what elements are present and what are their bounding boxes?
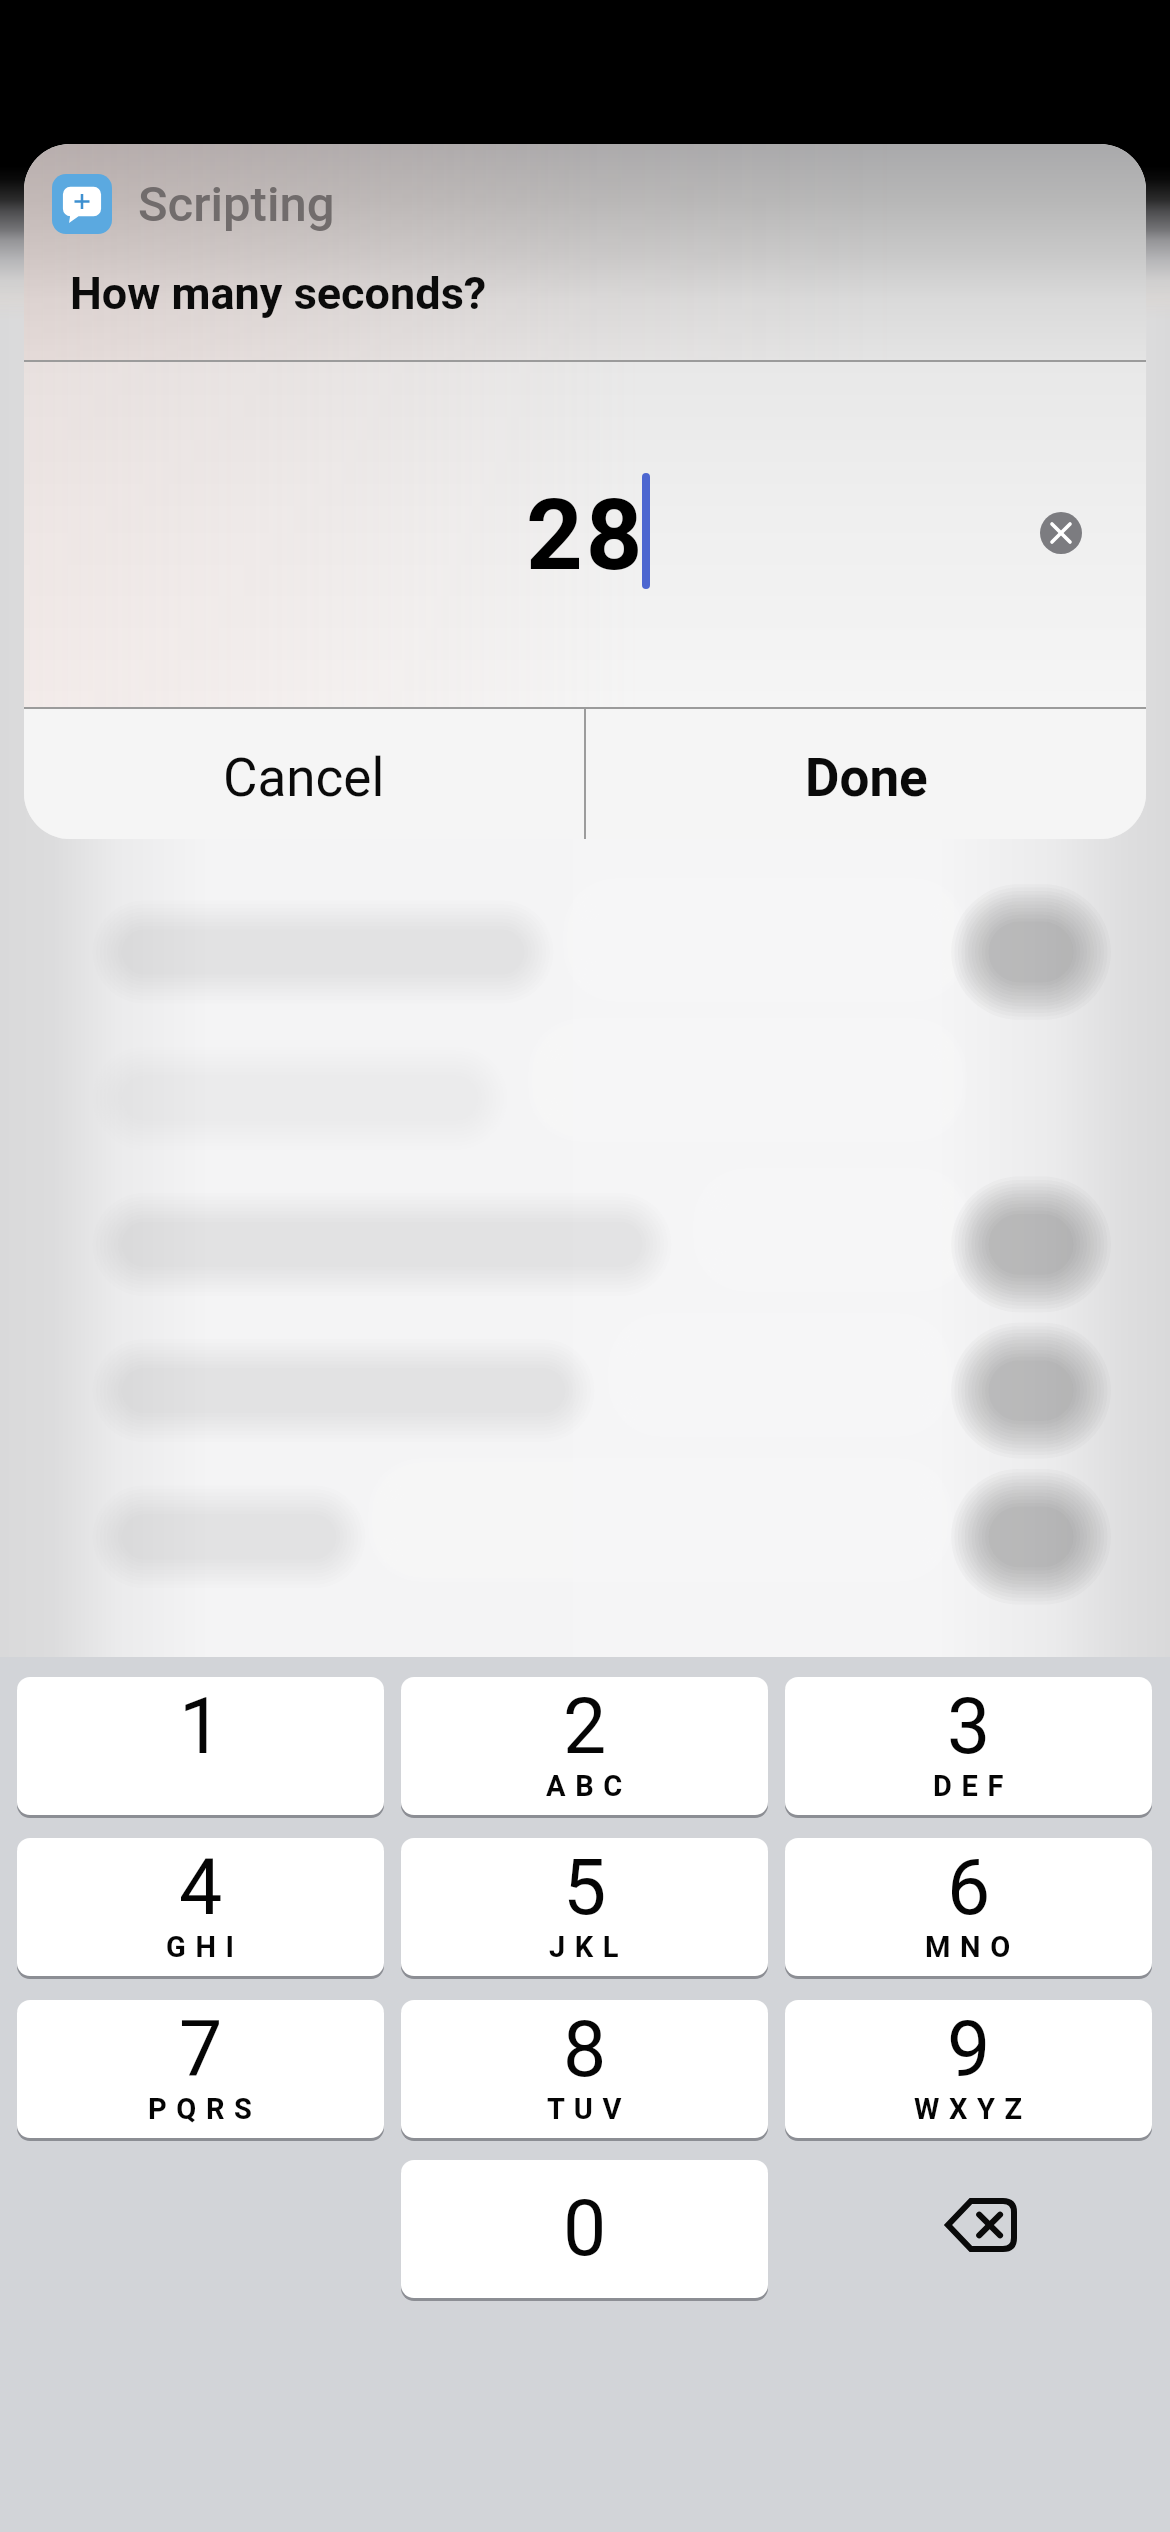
staticText: 7: [179, 2005, 223, 2095]
staticText: 6: [947, 1843, 991, 1933]
staticText: 3: [947, 1682, 991, 1772]
staticText: A B C: [546, 1769, 624, 1803]
staticText: T U V: [547, 2092, 623, 2126]
staticText: How many seconds?: [70, 267, 487, 320]
button[interactable]: Clear text: [1027, 499, 1095, 567]
staticText: Done: [805, 747, 928, 809]
button[interactable]: 5: [401, 1838, 768, 1976]
staticText: Scripting: [138, 176, 335, 233]
staticText: J K L: [549, 1930, 620, 1964]
staticText: D E F: [933, 1769, 1005, 1803]
staticText: 4: [179, 1843, 223, 1933]
button[interactable]: 4: [17, 1838, 384, 1976]
staticText: 9: [947, 2005, 991, 2095]
button[interactable]: 1: [17, 1677, 384, 1815]
button[interactable]: 7: [17, 2000, 384, 2138]
button[interactable]: 6: [785, 1838, 1152, 1976]
button[interactable]: 3: [785, 1677, 1152, 1815]
staticText: 2: [563, 1682, 607, 1772]
staticText: G H I: [166, 1930, 236, 1964]
staticText: P Q R S: [148, 2092, 254, 2126]
button[interactable]: 8: [401, 2000, 768, 2138]
staticText: 5: [563, 1843, 607, 1933]
button[interactable]: Backspace: [785, 2160, 1152, 2298]
button[interactable]: 2: [401, 1677, 768, 1815]
staticText: M N O: [925, 1930, 1012, 1964]
button[interactable]: Cancel: [24, 709, 584, 839]
staticText: Cancel: [223, 747, 385, 809]
staticText: 0: [563, 2184, 607, 2274]
button[interactable]: Done: [586, 709, 1146, 839]
button[interactable]: 9: [785, 2000, 1152, 2138]
staticText: 8: [563, 2005, 607, 2095]
staticText: 1: [179, 1682, 223, 1772]
button[interactable]: 0: [401, 2160, 768, 2298]
staticText: W X Y Z: [914, 2092, 1024, 2126]
staticText: 28: [526, 477, 646, 593]
